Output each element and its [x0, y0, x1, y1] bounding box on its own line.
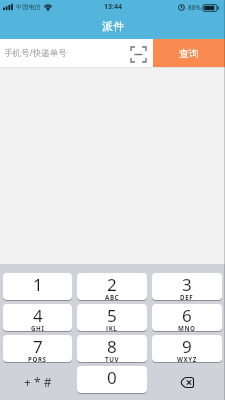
staticText: 1: [33, 273, 43, 296]
staticText: WXYZ: [177, 355, 197, 362]
staticText: 0: [107, 366, 117, 389]
staticText: 6: [182, 304, 192, 327]
staticText: 8: [107, 335, 117, 358]
staticText: 7: [33, 335, 43, 358]
staticText: GHI: [31, 324, 45, 331]
staticText: 88%: [188, 3, 201, 12]
staticText: 9: [182, 335, 192, 358]
staticText: 手机号/快递单号: [4, 47, 67, 59]
staticText: 3: [182, 273, 192, 296]
staticText: 4: [33, 304, 43, 327]
staticText: MNO: [178, 324, 196, 331]
staticText: DEF: [180, 293, 194, 300]
staticText: ABC: [105, 293, 120, 300]
staticText: 2: [107, 273, 117, 296]
staticText: JKL: [106, 324, 118, 331]
staticText: 5: [107, 304, 117, 327]
staticText: 13:44: [104, 2, 122, 12]
staticText: 中国电信: [16, 3, 41, 11]
staticText: + * #: [24, 374, 52, 390]
staticText: PQRS: [28, 355, 47, 362]
staticText: 查询: [179, 47, 199, 60]
staticText: 派件: [102, 19, 124, 33]
staticText: TUV: [105, 355, 120, 362]
